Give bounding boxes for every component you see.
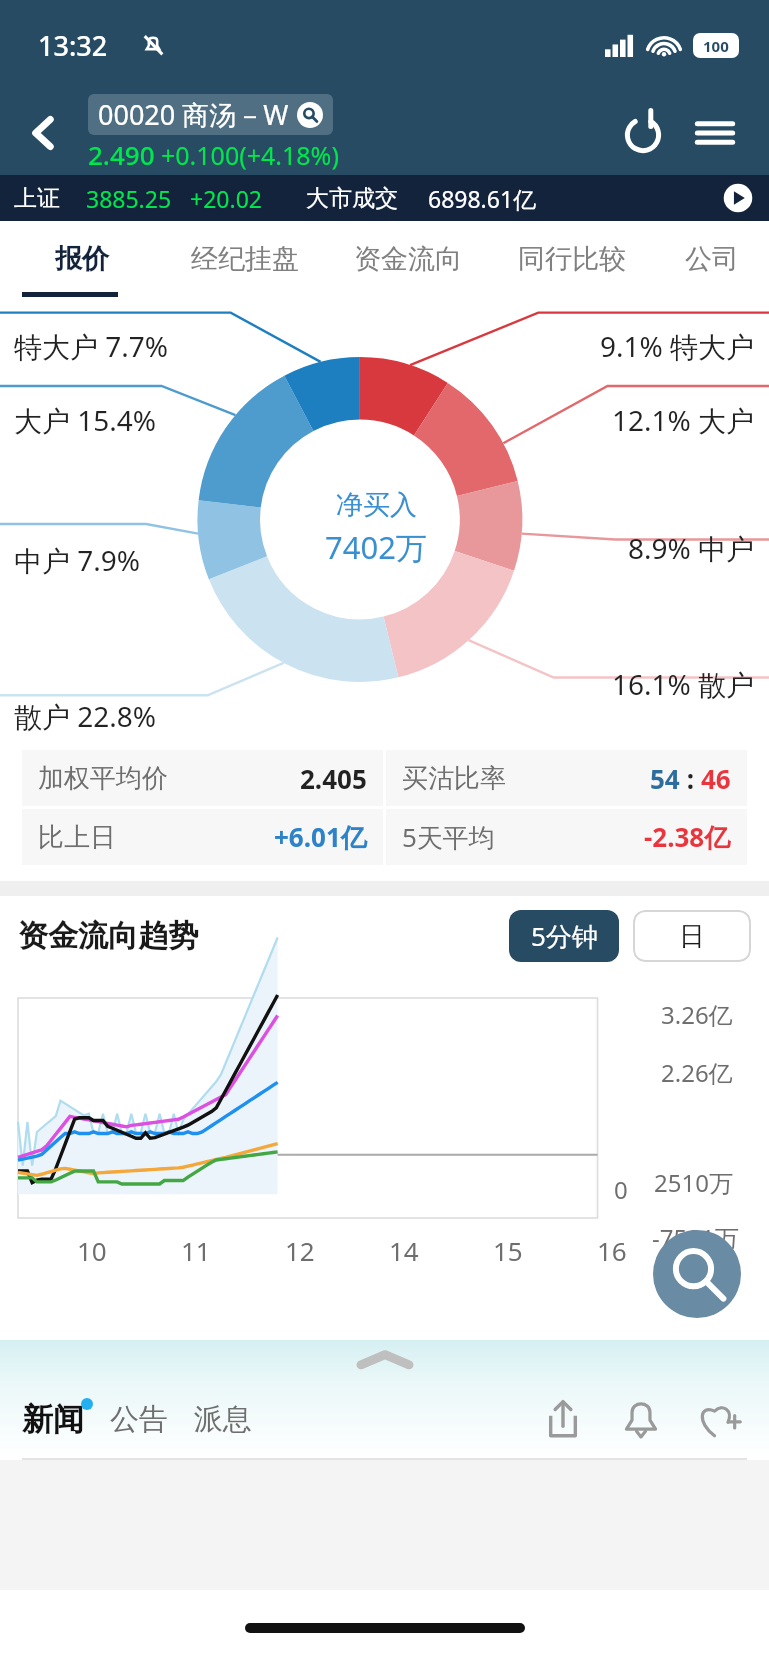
- staticText: +20.02: [190, 183, 262, 214]
- staticText: 12.1% 大户: [612, 401, 755, 439]
- staticText: 大户 15.4%: [14, 401, 157, 439]
- button[interactable]: 新闻: [22, 1400, 84, 1439]
- staticText: 中户 7.9%: [14, 541, 141, 579]
- button[interactable]: 加权平均价: [38, 750, 367, 806]
- staticText: 3885.25: [86, 183, 172, 214]
- button[interactable]: 派息: [194, 1401, 252, 1438]
- staticText: 11: [181, 1233, 211, 1268]
- staticText: 13:32: [38, 27, 108, 64]
- button[interactable]: 报价: [0, 221, 163, 297]
- staticText: 100: [703, 36, 729, 56]
- staticText: 2510万: [654, 1166, 733, 1199]
- staticText: 净买入: [336, 488, 417, 522]
- staticText: +6.01亿: [274, 819, 367, 855]
- staticText: 同行比较: [518, 242, 626, 276]
- button[interactable]: 00020 商汤－W: [98, 96, 323, 133]
- staticText: 12: [285, 1233, 315, 1268]
- staticText: -2.38亿: [644, 819, 731, 855]
- button[interactable]: 5分钟: [509, 910, 619, 962]
- staticText: 9.1% 特大户: [600, 327, 755, 365]
- staticText: 5天平均: [402, 819, 495, 855]
- button[interactable]: 公司: [654, 221, 769, 297]
- button[interactable]: 经纪挂盘: [163, 221, 326, 297]
- staticText: 加权平均价: [38, 762, 168, 795]
- staticText: -7521万: [652, 1221, 739, 1254]
- staticText: 特大户 7.7%: [14, 327, 169, 365]
- button[interactable]: 日: [633, 910, 751, 962]
- staticText: 5分钟: [531, 918, 598, 954]
- staticText: 派息: [194, 1401, 252, 1438]
- staticText: 14: [389, 1233, 419, 1268]
- button[interactable]: Play: [721, 181, 755, 215]
- button[interactable]: 买沽比率: [402, 750, 731, 806]
- staticText: 比上日: [38, 821, 116, 854]
- staticText: 资金流向趋势: [18, 917, 198, 955]
- staticText: 15: [493, 1233, 523, 1268]
- staticText: 2.405: [300, 761, 367, 796]
- staticText: 7402万: [325, 526, 427, 568]
- staticText: 0: [614, 1173, 628, 1206]
- staticText: +0.100(+4.18%): [161, 138, 339, 172]
- staticText: 00020 商汤－W: [98, 96, 289, 133]
- button[interactable]: 5天平均: [402, 809, 731, 865]
- staticText: 2.490: [88, 137, 155, 172]
- button[interactable]: Menu: [689, 107, 741, 159]
- staticText: 10: [77, 1233, 107, 1268]
- staticText: 6898.61亿: [428, 183, 537, 214]
- staticText: 日: [679, 920, 705, 953]
- button[interactable]: 同行比较: [490, 221, 654, 297]
- button[interactable]: Alerts: [613, 1391, 669, 1447]
- button[interactable]: Back: [18, 107, 70, 159]
- button[interactable]: 比上日: [38, 809, 367, 865]
- staticText: :: [680, 761, 701, 796]
- staticText: 资金流向: [354, 242, 462, 276]
- button[interactable]: 资金流向: [326, 221, 490, 297]
- staticText: 公告: [110, 1401, 168, 1438]
- staticText: 买沽比率: [402, 762, 506, 795]
- staticText: 散户 22.8%: [14, 697, 157, 735]
- staticText: 3.26亿: [661, 998, 733, 1031]
- staticText: 大市成交: [306, 184, 398, 213]
- staticText: 8.9% 中户: [628, 529, 755, 567]
- staticText: 54: [650, 761, 680, 796]
- staticText: 46: [701, 761, 731, 796]
- button[interactable]: 公告: [110, 1401, 168, 1438]
- staticText: 新闻: [22, 1400, 84, 1439]
- staticText: 报价: [55, 242, 109, 276]
- staticText: 上证: [14, 184, 60, 213]
- staticText: 公司: [685, 242, 739, 276]
- button[interactable]: Share: [535, 1391, 591, 1447]
- staticText: 2.26亿: [661, 1056, 733, 1089]
- button[interactable]: Search: [653, 1230, 741, 1318]
- staticText: 16.1% 散户: [612, 665, 755, 703]
- button[interactable]: Add to watchlist: [691, 1391, 747, 1447]
- staticText: 经纪挂盘: [191, 242, 299, 276]
- staticText: 16: [597, 1233, 627, 1268]
- button[interactable]: Refresh: [617, 107, 669, 159]
